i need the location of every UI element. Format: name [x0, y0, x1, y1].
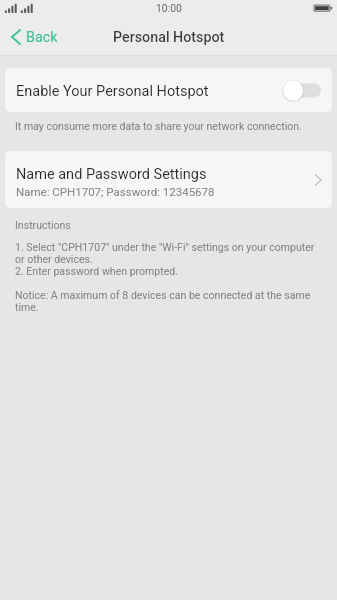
button[interactable]: Name and Password Settings: [5, 151, 332, 208]
staticText: Instructions: [15, 219, 71, 231]
staticText: Notice: A maximum of 8 devices can be co…: [15, 289, 322, 313]
staticText: Personal Hotspot: [113, 29, 225, 46]
staticText: It may consume more data to share your n…: [15, 120, 302, 132]
staticText: Name: CPH1707; Password: 12345678: [16, 185, 215, 198]
staticText: Back: [26, 29, 58, 46]
button[interactable]: Back: [11, 17, 58, 56]
staticText: 1. Select "CPH1707" under the "Wi-Fi" se…: [15, 241, 322, 277]
button[interactable]: Enable Your Personal Hotspot: [5, 68, 332, 112]
staticText: 10:00: [156, 2, 182, 14]
staticText: Enable Your Personal Hotspot: [16, 83, 209, 100]
button[interactable]: Enable Your Personal Hotspot: [283, 80, 321, 101]
staticText: Name and Password Settings: [16, 166, 207, 183]
